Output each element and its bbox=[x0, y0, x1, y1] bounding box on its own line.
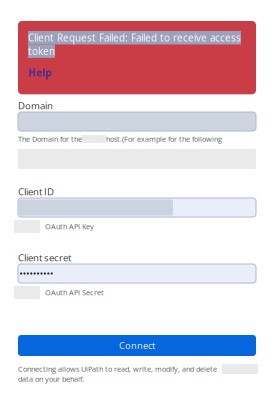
staticText: Domain bbox=[18, 99, 53, 112]
staticText: Help bbox=[28, 66, 51, 79]
staticText: The Domain for the bbox=[18, 134, 82, 144]
staticText: token bbox=[28, 44, 55, 58]
staticText: Connecting allows UiPath to read, write,… bbox=[18, 364, 217, 374]
staticText: OAuth API Key bbox=[45, 221, 94, 231]
staticText: Client ID bbox=[18, 185, 54, 198]
staticText: Client Request Failed: Failed to receive… bbox=[28, 31, 241, 44]
button[interactable]: Help bbox=[28, 66, 51, 79]
staticText: Connect bbox=[119, 339, 155, 352]
staticText: OAuth API Secret bbox=[45, 287, 104, 297]
staticText: host.(For example for the following bbox=[106, 134, 222, 144]
staticText: Client secret bbox=[18, 251, 71, 264]
button[interactable]: Connect bbox=[18, 335, 256, 356]
staticText: data on your behalf. bbox=[18, 374, 84, 384]
